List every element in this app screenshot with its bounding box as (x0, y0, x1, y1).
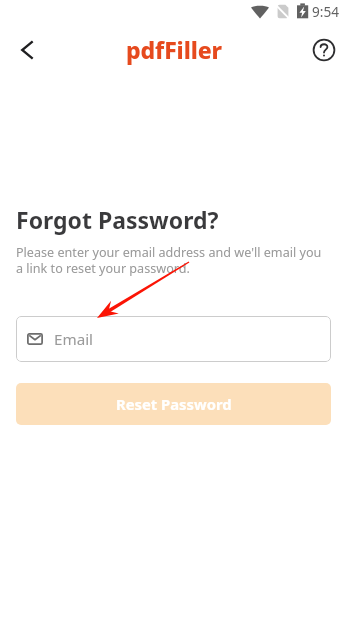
staticText: 9:54 (312, 2, 339, 21)
button[interactable]: Email (16, 316, 331, 362)
staticText: Forgot Password? (16, 204, 219, 235)
button[interactable]: Reset Password (16, 383, 331, 425)
button[interactable]: Back (3, 26, 51, 74)
button[interactable]: Help (300, 26, 347, 73)
staticText: Email (54, 329, 94, 350)
staticText: pdfFiller (126, 34, 222, 65)
staticText: Please enter your email address and we'l… (16, 244, 328, 277)
staticText: Reset Password (116, 394, 232, 414)
